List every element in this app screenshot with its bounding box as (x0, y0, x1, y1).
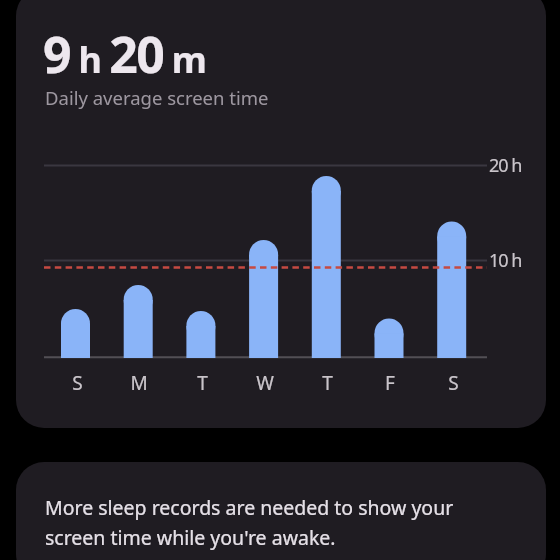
staticText: S (72, 370, 83, 396)
staticText: 10 h (489, 248, 522, 273)
staticText: Daily average screen time (45, 85, 269, 110)
staticText: 20 h (489, 153, 522, 178)
staticText: F (385, 370, 395, 396)
staticText: T (197, 370, 208, 396)
button[interactable] (16, 462, 546, 560)
staticText: 9 h 20 m (43, 20, 206, 88)
staticText: W (256, 370, 274, 396)
staticText: T (322, 370, 333, 396)
staticText: M (130, 370, 148, 396)
staticText: S (448, 370, 459, 396)
button[interactable] (16, 0, 546, 428)
staticText: More sleep records are needed to show yo… (45, 494, 454, 550)
